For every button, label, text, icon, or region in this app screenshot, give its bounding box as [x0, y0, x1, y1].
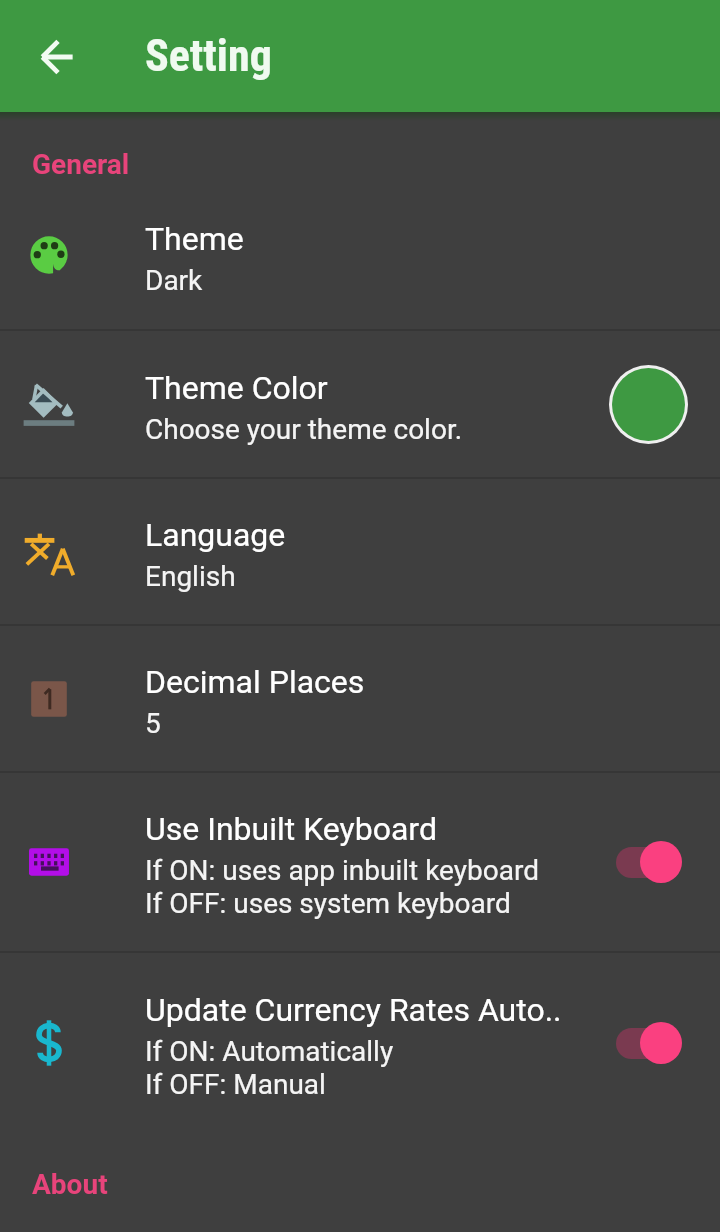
button[interactable]: Decimal Places	[0, 626, 720, 771]
button[interactable]: Back	[23, 23, 90, 90]
button[interactable]: Update Currency Rates Auto..	[0, 953, 720, 1133]
button[interactable]	[616, 1016, 682, 1070]
staticText: Setting	[145, 30, 272, 82]
staticText: General	[32, 148, 130, 181]
button[interactable]: Theme Color	[0, 331, 720, 477]
staticText: About	[32, 1168, 108, 1201]
staticText: Theme Color	[145, 369, 328, 407]
staticText: Dark	[145, 264, 203, 297]
button[interactable]: Language	[0, 479, 720, 624]
staticText: Choose your theme color.	[145, 413, 463, 446]
staticText: Use Inbuilt Keyboard	[145, 810, 437, 848]
staticText: If ON: uses app inbuilt keyboard If OFF:…	[145, 854, 539, 920]
staticText: Update Currency Rates Auto..	[145, 991, 562, 1029]
button[interactable]	[616, 835, 682, 889]
staticText: Theme	[145, 220, 244, 258]
staticText: 5	[145, 707, 161, 740]
staticText: If ON: Automatically If OFF: Manual	[145, 1035, 394, 1101]
staticText: Language	[145, 516, 286, 554]
button[interactable]: Use Inbuilt Keyboard	[0, 773, 720, 951]
button[interactable]	[612, 368, 685, 441]
staticText: Decimal Places	[145, 663, 365, 701]
button[interactable]: Theme	[0, 181, 720, 329]
staticText: English	[145, 560, 236, 593]
